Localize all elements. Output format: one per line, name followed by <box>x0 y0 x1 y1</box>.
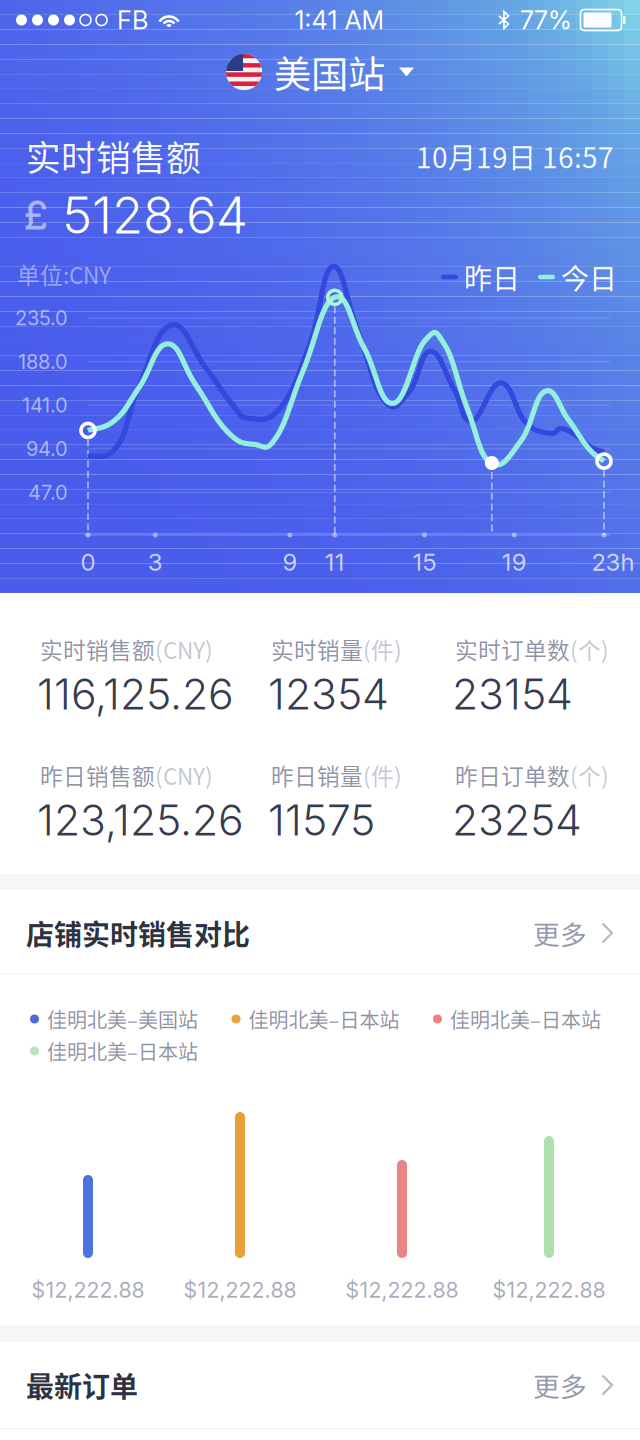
staticText: £ <box>24 191 48 239</box>
button[interactable]: 最新订单 <box>0 1342 640 1428</box>
staticText: 19 <box>502 547 527 576</box>
staticText: $12,222.88 <box>492 1277 605 1303</box>
staticText: 更多 <box>533 1366 587 1404</box>
staticText: 美国站 <box>274 45 385 99</box>
staticText: 最新订单 <box>26 1365 138 1405</box>
staticText: 10月19日 16:57 <box>416 136 614 176</box>
staticText: 佳明北美–日本站 <box>248 1004 399 1033</box>
staticText: 实时销量 <box>271 633 363 665</box>
staticText: 今日 <box>561 257 617 297</box>
staticText: 1:41 AM <box>294 5 384 35</box>
staticText: (件) <box>363 759 402 791</box>
staticText: FB <box>117 5 148 35</box>
staticText: 235.0 <box>15 306 68 330</box>
staticText: (CNY) <box>155 633 213 665</box>
staticText: 店铺实时销售对比 <box>26 913 250 953</box>
staticText: 11575 <box>268 794 375 846</box>
staticText: (个) <box>570 759 609 791</box>
staticText: $12,222.88 <box>183 1277 296 1303</box>
staticText: 47.0 <box>28 480 68 504</box>
button[interactable]: 店铺实时销售对比 <box>0 890 640 976</box>
staticText: 77% <box>520 5 572 35</box>
staticText: 116,125.26 <box>37 668 234 720</box>
staticText: 0 <box>80 547 95 576</box>
staticText: 94.0 <box>26 437 68 461</box>
staticText: 15 <box>412 547 436 576</box>
staticText: 123,125.26 <box>37 794 244 846</box>
staticText: (件) <box>363 633 402 665</box>
staticText: 实时销售额 <box>26 131 201 181</box>
staticText: 佳明北美–美国站 <box>47 1004 198 1033</box>
staticText: 11 <box>325 547 345 576</box>
staticText: 实时销售额 <box>40 633 155 665</box>
staticText: 9 <box>282 547 297 576</box>
staticText: 141.0 <box>22 393 68 417</box>
staticText: 昨日订单数 <box>455 759 570 791</box>
staticText: 佳明北美–日本站 <box>450 1004 601 1033</box>
staticText: 昨日销量 <box>271 759 363 791</box>
staticText: 23h <box>591 547 634 576</box>
staticText: 昨日销售额 <box>40 759 155 791</box>
staticText: 12354 <box>268 668 389 720</box>
staticText: 佳明北美–日本站 <box>47 1036 198 1065</box>
staticText: 23254 <box>452 794 582 846</box>
staticText: $12,222.88 <box>345 1277 458 1303</box>
staticText: 23154 <box>452 668 573 720</box>
staticText: 3 <box>148 547 163 576</box>
staticText: 昨日 <box>464 257 520 297</box>
staticText: 实时订单数 <box>455 633 570 665</box>
staticText: 188.0 <box>18 349 68 374</box>
staticText: (个) <box>570 633 609 665</box>
staticText: $12,222.88 <box>31 1277 144 1303</box>
staticText: (CNY) <box>155 759 213 791</box>
staticText: 更多 <box>533 914 587 952</box>
staticText: 5128.64 <box>62 184 248 246</box>
staticText: 单位:CNY <box>17 258 111 290</box>
button[interactable]: 美国站 <box>226 47 414 97</box>
